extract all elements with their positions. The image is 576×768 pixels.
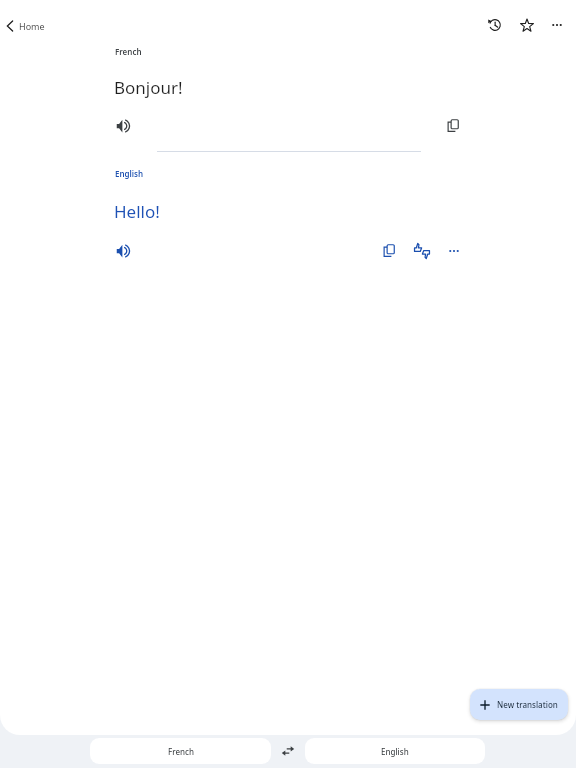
staticText: Hello! xyxy=(114,200,160,223)
button[interactable]: English xyxy=(305,738,485,764)
button[interactable]: Listen to translation xyxy=(110,238,136,264)
staticText: English xyxy=(381,746,409,757)
button[interactable]: New translation xyxy=(470,689,568,720)
button[interactable]: Rate this translation xyxy=(409,238,435,264)
button[interactable]: Swap languages xyxy=(275,738,301,764)
staticText: New translation xyxy=(497,699,558,710)
button[interactable]: Copy translation xyxy=(376,238,402,264)
staticText: Home xyxy=(19,20,45,32)
button[interactable]: More options xyxy=(544,12,570,38)
button[interactable]: History xyxy=(482,12,508,38)
button[interactable]: Save to favourites xyxy=(514,12,540,38)
button[interactable]: More translation options xyxy=(441,238,467,264)
button[interactable]: Home xyxy=(1,13,51,39)
button[interactable]: Listen to source text xyxy=(110,113,136,139)
staticText: English xyxy=(115,168,144,179)
staticText: Bonjour! xyxy=(114,76,183,99)
staticText: French xyxy=(115,46,142,57)
button[interactable]: French xyxy=(90,738,271,764)
button[interactable]: Copy source text xyxy=(440,113,466,139)
staticText: French xyxy=(168,746,194,757)
